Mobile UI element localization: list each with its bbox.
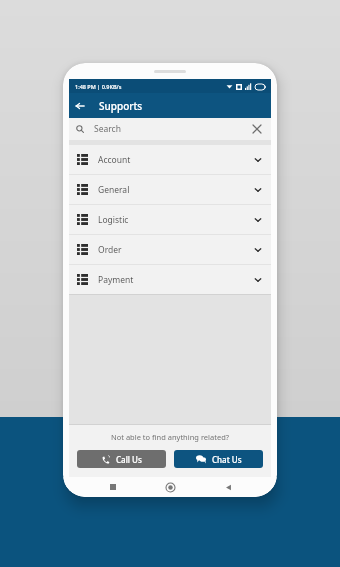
- button[interactable]: Home: [162, 479, 178, 495]
- staticText: Not able to find anything related?: [69, 432, 271, 442]
- staticText: Chat Us: [212, 454, 242, 465]
- button[interactable]: Order: [69, 235, 271, 264]
- staticText: Payment: [98, 274, 134, 286]
- staticText: Supports: [99, 99, 143, 113]
- button[interactable]: Account: [69, 145, 271, 174]
- button[interactable]: Search: [69, 118, 271, 140]
- staticText: General: [98, 184, 130, 196]
- staticText: 1:48 PM | 0.9KB/s: [75, 83, 122, 90]
- button[interactable]: Payment: [69, 265, 271, 294]
- button[interactable]: Recent apps: [105, 479, 121, 495]
- button[interactable]: Clear search: [250, 122, 264, 136]
- staticText: Search: [94, 123, 121, 135]
- button[interactable]: Back: [69, 95, 91, 117]
- staticText: Call Us: [116, 454, 142, 465]
- staticText: Account: [98, 154, 131, 166]
- button[interactable]: Back: [220, 479, 236, 495]
- button[interactable]: Call Us: [77, 450, 166, 468]
- button[interactable]: Chat Us: [174, 450, 263, 468]
- button[interactable]: General: [69, 175, 271, 204]
- staticText: Order: [98, 244, 122, 256]
- staticText: Logistic: [98, 214, 129, 226]
- button[interactable]: Logistic: [69, 205, 271, 234]
